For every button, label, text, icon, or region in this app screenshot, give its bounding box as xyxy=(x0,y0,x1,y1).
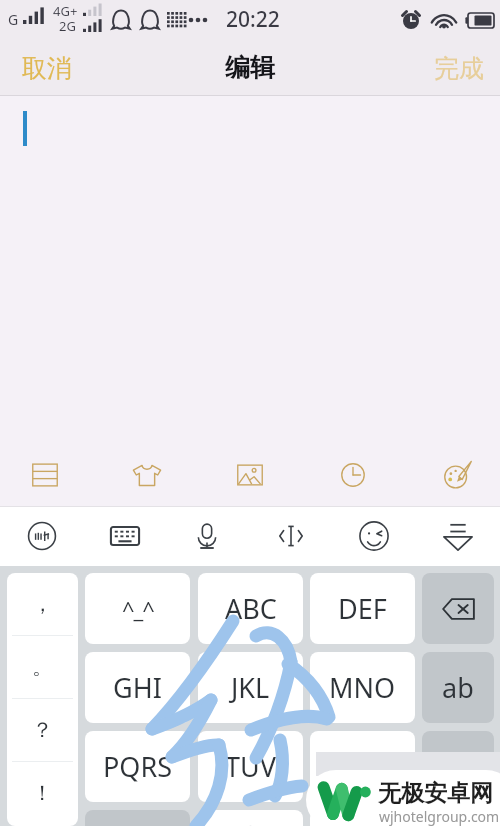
staticText: JKL xyxy=(231,669,270,706)
button[interactable]: TUV xyxy=(198,731,303,802)
button[interactable]: Emoji xyxy=(348,510,400,562)
staticText: ^_^ xyxy=(122,594,154,624)
button[interactable]: Image xyxy=(219,444,281,506)
button[interactable]: Input method xyxy=(16,510,68,562)
button[interactable]: ！ xyxy=(7,762,78,824)
button[interactable]: ？ xyxy=(7,699,78,761)
staticText: G xyxy=(8,10,19,29)
staticText: wjhotelgroup.com xyxy=(379,807,500,826)
button[interactable]: Move cursor xyxy=(265,510,317,562)
button[interactable]: Enter xyxy=(310,810,415,826)
button[interactable]: JKL xyxy=(198,652,303,723)
staticText: ab xyxy=(442,669,474,706)
button[interactable]: List xyxy=(14,444,76,506)
staticText: 编辑 xyxy=(225,52,275,83)
staticText: ！ xyxy=(32,780,53,806)
button[interactable]: Backspace xyxy=(422,573,494,644)
button[interactable]: 取消 xyxy=(14,47,80,90)
staticText: 4G+ xyxy=(53,2,78,20)
button[interactable] xyxy=(422,731,494,802)
staticText: DEF xyxy=(338,590,387,627)
button[interactable]: 完成 xyxy=(426,47,492,90)
button[interactable]: WXYZ xyxy=(310,731,415,802)
button[interactable]: Paint xyxy=(426,444,488,506)
staticText: 取消 xyxy=(22,53,72,84)
staticText: ， xyxy=(32,591,53,617)
staticText: MNO xyxy=(329,669,396,706)
button[interactable]: DEF xyxy=(310,573,415,644)
staticText: ABC xyxy=(225,590,277,627)
button[interactable]: GHI xyxy=(85,652,190,723)
staticText: 无极安卓网 xyxy=(378,779,493,808)
button[interactable]: Return xyxy=(422,810,494,826)
button[interactable]: 。 xyxy=(7,636,78,698)
staticText: 20:22 xyxy=(226,5,280,34)
staticText: TUV xyxy=(225,748,276,785)
button[interactable]: ABC xyxy=(198,573,303,644)
button[interactable]: PQRS xyxy=(85,731,190,802)
staticText: ？ xyxy=(32,717,53,743)
button[interactable]: ab xyxy=(422,652,494,723)
button[interactable]: Space xyxy=(198,810,303,826)
button[interactable]: Template xyxy=(116,444,178,506)
button[interactable]: MNO xyxy=(310,652,415,723)
button[interactable]: Voice input xyxy=(181,510,233,562)
staticText: 2G xyxy=(59,17,76,35)
staticText: WXYZ xyxy=(327,748,399,785)
staticText: GHI xyxy=(113,669,162,706)
button[interactable]: Reminder xyxy=(322,444,384,506)
staticText: PQRS xyxy=(103,748,173,785)
staticText: 。 xyxy=(32,654,53,680)
button[interactable]: Hide keyboard xyxy=(432,510,484,562)
button[interactable]: ^_^ xyxy=(85,573,190,644)
button[interactable]: Keyboard layout xyxy=(99,510,151,562)
staticText: 完成 xyxy=(434,53,484,84)
button[interactable]: ， xyxy=(7,573,78,635)
